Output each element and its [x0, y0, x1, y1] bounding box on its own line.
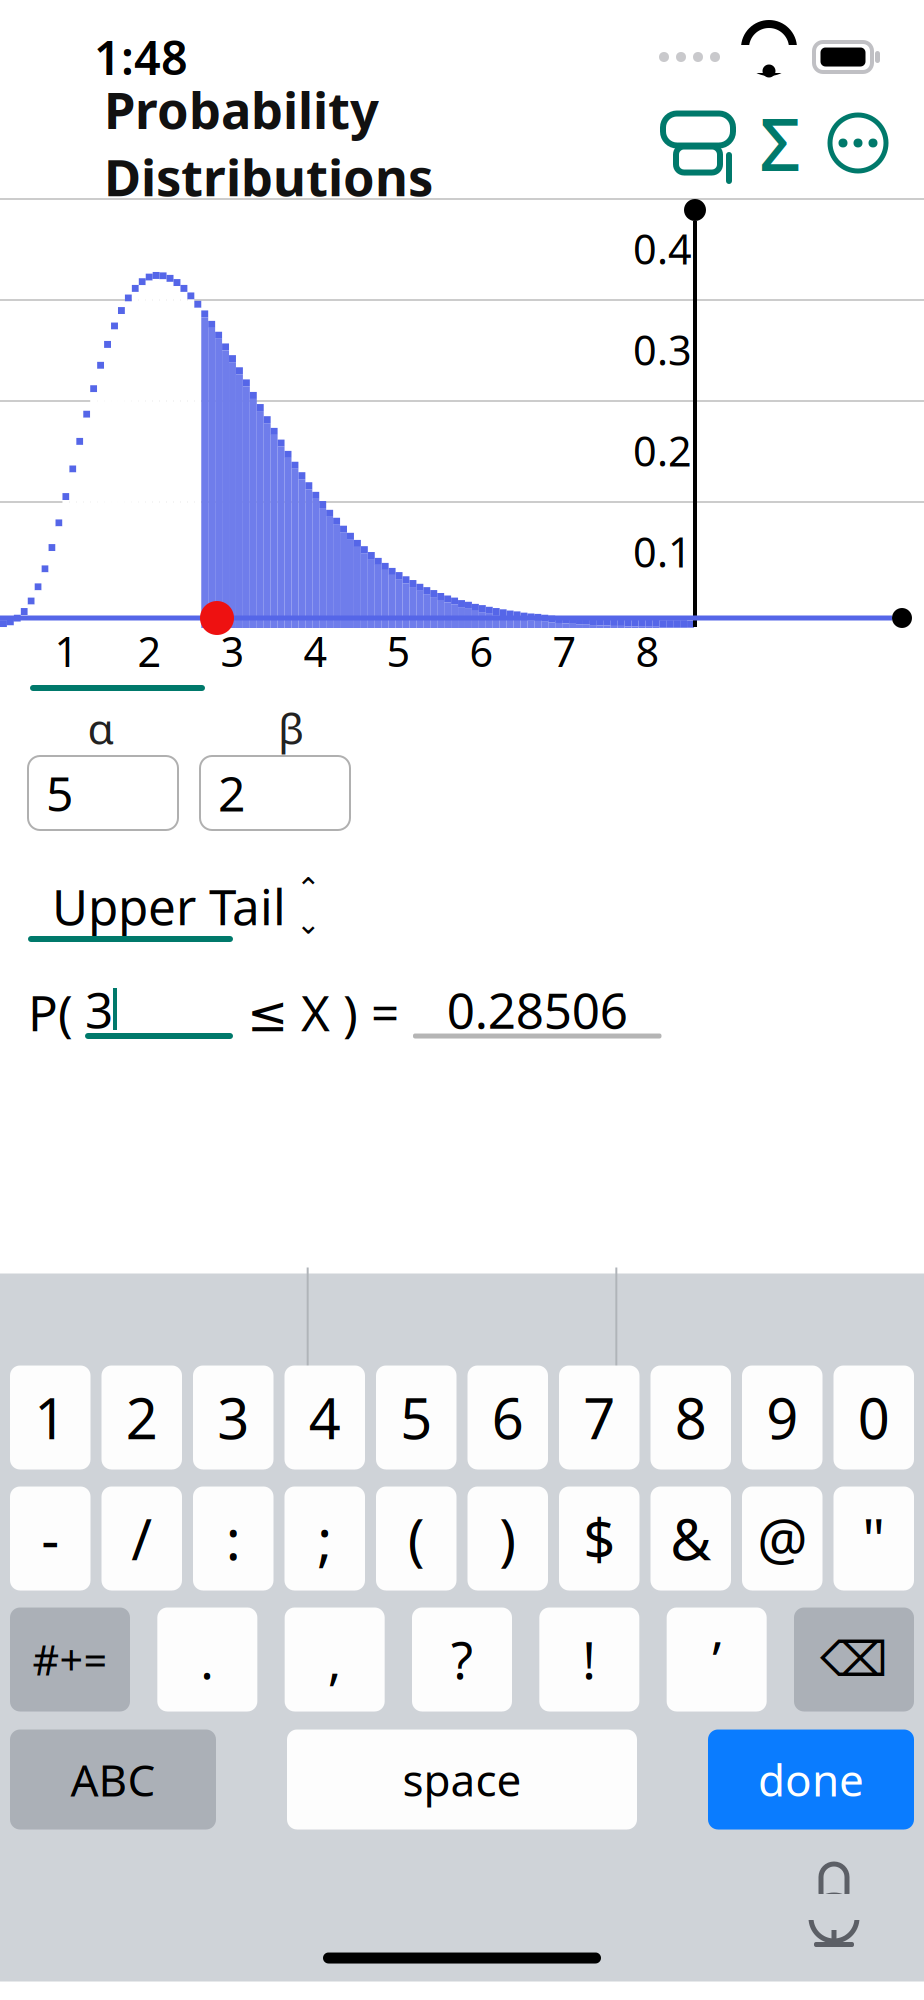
staticText: - [41, 1501, 59, 1576]
staticText: 4 [309, 1380, 341, 1455]
staticText: : [226, 1501, 241, 1576]
button[interactable]: 3 [193, 1365, 273, 1469]
button[interactable]: ; [284, 1486, 365, 1590]
staticText: 2 [137, 624, 161, 678]
staticText: 1 [54, 624, 78, 678]
staticText: 7 [552, 624, 576, 678]
staticText: ABC [70, 1750, 155, 1809]
button[interactable]: @ [742, 1486, 822, 1590]
staticText: ≤ X ) = [247, 979, 399, 1045]
staticText: ! [582, 1626, 596, 1693]
button[interactable]: , [285, 1607, 385, 1711]
staticText: ⌄ [296, 907, 321, 940]
staticText: ⌃ [296, 872, 321, 905]
staticText: 1 [34, 1380, 66, 1455]
staticText: α [87, 700, 114, 756]
staticText: ; [317, 1501, 332, 1576]
button[interactable]: ’ [667, 1607, 767, 1711]
button[interactable]: 9 [742, 1365, 822, 1469]
staticText: Probability Distributions [104, 76, 433, 210]
button[interactable]: . [157, 1607, 257, 1711]
staticText: 5 [386, 624, 410, 678]
staticText: 0 [858, 1380, 890, 1455]
staticText: 1:48 [94, 26, 188, 88]
staticText: β [278, 700, 304, 756]
staticText: $ [583, 1501, 615, 1576]
button[interactable]: Dictate [804, 1857, 864, 1953]
staticText: 9 [766, 1380, 798, 1455]
button[interactable]: & [650, 1486, 731, 1590]
button[interactable]: ) [467, 1486, 548, 1590]
button[interactable]: 7 [559, 1365, 639, 1469]
staticText: 5 [400, 1380, 432, 1455]
button[interactable]: Formulas [742, 104, 818, 182]
button[interactable]: ABC [10, 1729, 216, 1829]
button[interactable]: 6 [467, 1365, 548, 1469]
button[interactable]: 2 [200, 756, 350, 830]
staticText: 2 [218, 761, 245, 825]
staticText: 7 [583, 1380, 615, 1455]
button[interactable]: / [101, 1486, 182, 1590]
staticText: 2 [126, 1380, 158, 1455]
staticText: 3 [217, 1380, 249, 1455]
button[interactable]: Lessons [654, 102, 742, 184]
button[interactable]: 0 [833, 1365, 914, 1469]
button[interactable]: ? [412, 1607, 512, 1711]
button[interactable]: More options [818, 104, 898, 182]
button[interactable]: 5 [28, 756, 178, 830]
button[interactable]: 4 [284, 1365, 365, 1469]
button[interactable]: 8 [650, 1365, 731, 1469]
button[interactable]: 3 [73, 985, 233, 1039]
staticText: Upper Tail [52, 873, 286, 939]
staticText: 8 [675, 1380, 707, 1455]
button[interactable]: ⌫ [794, 1607, 914, 1711]
staticText: 6 [492, 1380, 524, 1455]
button[interactable]: ! [539, 1607, 639, 1711]
staticText: 4 [303, 624, 327, 678]
staticText: space [402, 1750, 521, 1809]
staticText: 3 [220, 624, 244, 678]
staticText: 5 [46, 761, 73, 825]
staticText: & [670, 1501, 711, 1576]
staticText: , [328, 1626, 342, 1693]
staticText: P( [28, 979, 73, 1045]
staticText: ( [408, 1501, 425, 1576]
button[interactable]: space [287, 1729, 637, 1829]
staticText: 0.2 [633, 423, 692, 478]
staticText: 0.1 [633, 524, 692, 579]
button[interactable]: - [10, 1486, 90, 1590]
staticText: 6 [469, 624, 493, 678]
button[interactable]: ( [376, 1486, 456, 1590]
staticText: Σ [759, 95, 800, 191]
staticText: / [131, 1501, 152, 1576]
staticText: 8 [635, 624, 659, 678]
button[interactable]: : [193, 1486, 273, 1590]
staticText: " [862, 1501, 885, 1576]
button[interactable]: $ [559, 1486, 639, 1590]
staticText: done [758, 1750, 864, 1809]
button[interactable]: 2 [101, 1365, 182, 1469]
button[interactable]: " [833, 1486, 914, 1590]
staticText: @ [757, 1501, 807, 1576]
staticText: 0.3 [633, 322, 692, 377]
button[interactable]: 1 [10, 1365, 90, 1469]
staticText: 0.4 [633, 221, 692, 276]
staticText: 0.28506 [447, 977, 628, 1042]
staticText: ⌫ [820, 1632, 888, 1687]
staticText: ) [499, 1501, 516, 1576]
button[interactable]: Upper Tail [0, 876, 924, 936]
staticText: 3 [85, 976, 113, 1042]
staticText: ’ [712, 1626, 721, 1693]
staticText: . [200, 1626, 214, 1693]
button[interactable]: 5 [376, 1365, 456, 1469]
staticText: ? [451, 1626, 473, 1693]
button[interactable]: #+= [10, 1607, 130, 1711]
button[interactable]: done [708, 1729, 914, 1829]
staticText: #+= [32, 1632, 107, 1687]
